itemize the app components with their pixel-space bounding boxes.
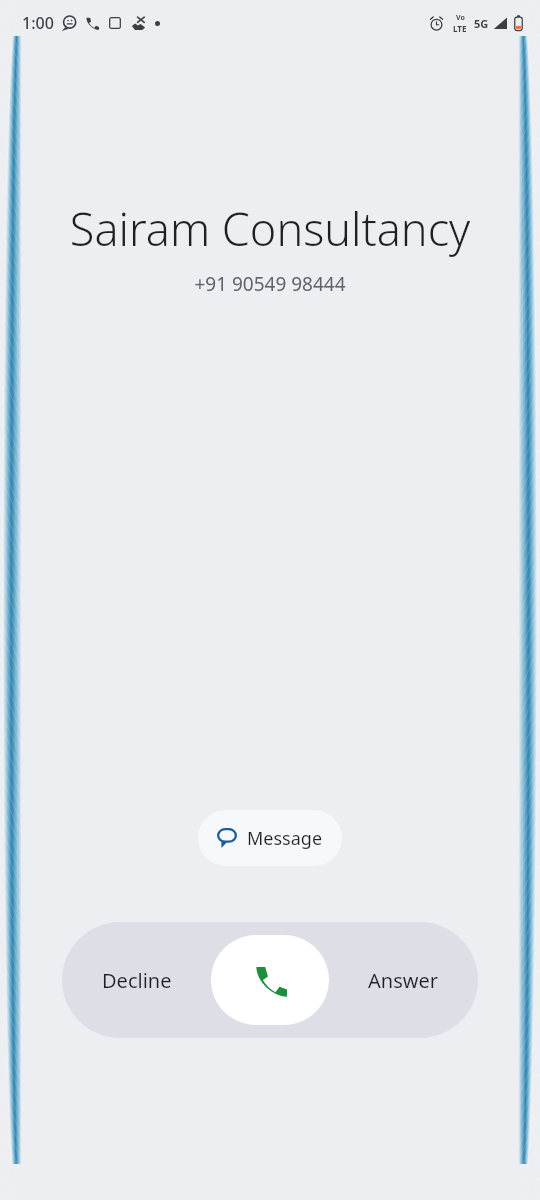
staticText: LTE: [453, 23, 467, 34]
button[interactable]: Message: [198, 810, 342, 866]
button[interactable]: Answer: [328, 922, 478, 1038]
staticText: Message: [247, 826, 323, 851]
staticText: Vo: [456, 13, 465, 23]
button[interactable]: Answer call: [211, 935, 329, 1025]
staticText: Decline: [102, 967, 172, 994]
staticText: +91 90549 98444: [0, 271, 540, 297]
button[interactable]: Decline: [62, 922, 212, 1038]
staticText: 1:00: [22, 12, 54, 34]
staticText: 5G: [474, 16, 489, 31]
staticText: Answer: [368, 967, 438, 994]
staticText: Sairam Consultancy: [10, 198, 530, 259]
